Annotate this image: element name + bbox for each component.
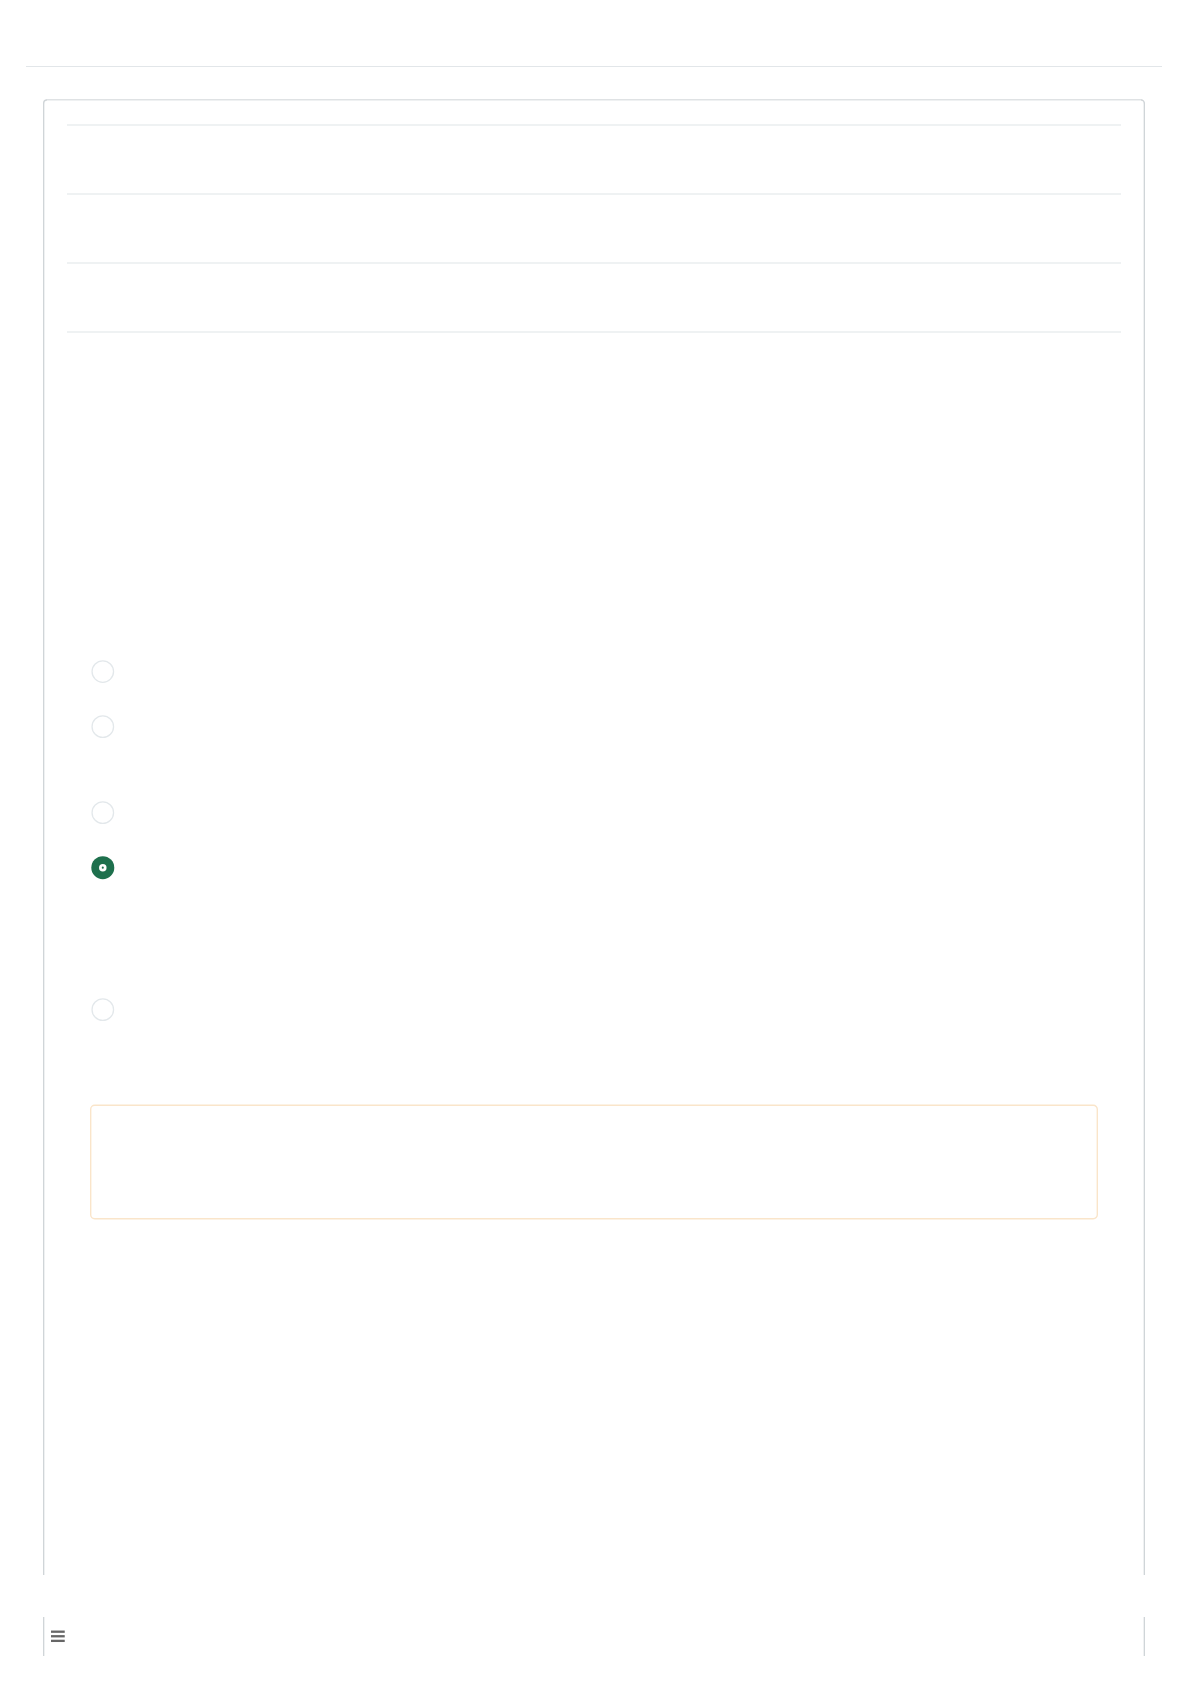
button[interactable]: Answer option 4: [67, 851, 1121, 885]
button[interactable]: Menu: [44, 1617, 74, 1656]
button[interactable]: Your answer: [90, 1105, 1098, 1219]
